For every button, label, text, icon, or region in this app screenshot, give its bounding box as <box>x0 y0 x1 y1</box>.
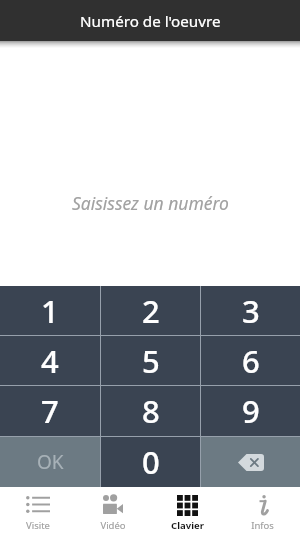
staticText: Clavier <box>171 519 204 532</box>
button[interactable]: Infos <box>225 487 300 533</box>
button[interactable]: Visite <box>0 487 75 533</box>
button[interactable]: Vidéo <box>75 487 150 533</box>
staticText: 6 <box>242 340 260 382</box>
staticText: 5 <box>142 340 160 382</box>
button[interactable]: Clavier <box>150 487 225 533</box>
staticText: 0 <box>142 441 160 483</box>
button[interactable]: 7 <box>0 386 100 436</box>
staticText: Visite <box>26 519 50 532</box>
button[interactable]: OK <box>0 437 100 487</box>
staticText: OK <box>37 449 64 475</box>
button[interactable]: 1 <box>0 286 100 335</box>
staticText: 8 <box>142 390 160 432</box>
button[interactable]: 9 <box>201 386 300 436</box>
staticText: Infos <box>251 519 274 532</box>
staticText: 3 <box>242 290 260 332</box>
button[interactable]: 8 <box>101 386 200 436</box>
button[interactable]: 5 <box>101 336 200 385</box>
button[interactable]: 4 <box>0 336 100 385</box>
staticText: Vidéo <box>100 519 126 532</box>
button[interactable]: 6 <box>201 336 300 385</box>
button[interactable]: Effacer <box>201 437 300 487</box>
staticText: Saisissez un numéro <box>72 191 229 215</box>
staticText: 7 <box>41 390 59 432</box>
staticText: 2 <box>142 290 160 332</box>
button[interactable]: 2 <box>101 286 200 335</box>
button[interactable]: 3 <box>201 286 300 335</box>
staticText: 1 <box>41 290 59 332</box>
staticText: 4 <box>41 340 59 382</box>
staticText: 9 <box>242 390 260 432</box>
button[interactable]: Numéro de l'oeuvre <box>0 0 300 41</box>
staticText: Numéro de l'oeuvre <box>80 11 221 32</box>
button[interactable]: 0 <box>101 437 200 487</box>
